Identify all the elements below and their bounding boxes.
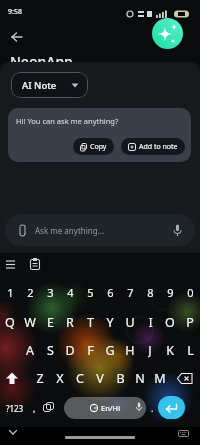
staticText: 1 xyxy=(7,285,14,299)
button[interactable]: W xyxy=(20,314,40,330)
button[interactable]: F xyxy=(80,342,100,358)
staticText: 0 xyxy=(187,285,194,299)
button[interactable]: 7 xyxy=(120,285,140,299)
button[interactable] xyxy=(6,260,16,269)
staticText: W xyxy=(24,314,36,330)
staticText: D xyxy=(65,342,75,358)
staticText: S xyxy=(47,342,54,358)
button[interactable]: I xyxy=(140,314,160,330)
button[interactable]: 8 xyxy=(140,285,160,299)
button[interactable]: B xyxy=(110,370,130,386)
staticText: C xyxy=(76,370,84,386)
button[interactable]: 4 xyxy=(60,285,80,299)
button[interactable]: A xyxy=(20,342,40,358)
staticText: I xyxy=(148,314,153,330)
staticText: Hi! You can ask me anything? xyxy=(16,116,119,126)
staticText: F xyxy=(87,342,94,358)
staticText: A xyxy=(26,342,34,358)
staticText: P xyxy=(186,314,194,330)
staticText: U xyxy=(125,314,135,330)
button[interactable]: ?123 xyxy=(2,399,28,417)
button[interactable] xyxy=(9,430,17,435)
staticText: R xyxy=(66,314,74,330)
staticText: 9:58 xyxy=(8,7,22,17)
button[interactable]: M xyxy=(150,370,170,386)
button[interactable] xyxy=(5,372,19,385)
button[interactable]: Y xyxy=(100,314,120,330)
staticText: K xyxy=(166,342,174,358)
staticText: . xyxy=(151,402,154,414)
staticText: 5 xyxy=(87,285,94,299)
staticText: B xyxy=(116,370,125,386)
staticText: NeonApp xyxy=(10,52,73,71)
button[interactable]: R xyxy=(60,314,80,330)
staticText: T xyxy=(87,314,94,330)
staticText: M xyxy=(154,370,166,386)
button[interactable]: H xyxy=(120,342,140,358)
button[interactable]: En/Hi xyxy=(64,397,146,419)
button[interactable]: 5 xyxy=(80,285,100,299)
staticText: O xyxy=(165,314,175,330)
button[interactable]: P xyxy=(180,314,200,330)
button[interactable]: V xyxy=(90,370,110,386)
button[interactable]: C xyxy=(70,370,90,386)
button[interactable]: J xyxy=(140,342,160,358)
staticText: Z xyxy=(36,370,44,386)
button[interactable] xyxy=(177,373,193,384)
button[interactable]: G xyxy=(100,342,120,358)
button[interactable]: 3 xyxy=(40,285,60,299)
button[interactable]: Q xyxy=(0,314,20,330)
button[interactable]: . xyxy=(147,399,157,417)
button[interactable]: T xyxy=(80,314,100,330)
button[interactable]: 2 xyxy=(20,285,40,299)
staticText: En/Hi xyxy=(101,403,121,413)
button[interactable]: 9 xyxy=(160,285,180,299)
staticText: 3 xyxy=(47,285,54,299)
button[interactable]: O xyxy=(160,314,180,330)
staticText: J xyxy=(148,342,152,358)
staticText: E xyxy=(47,314,54,330)
staticText: 6 xyxy=(107,285,114,299)
button[interactable] xyxy=(158,396,185,419)
staticText: L xyxy=(187,342,194,358)
staticText: 9 xyxy=(167,285,174,299)
button[interactable] xyxy=(43,402,54,413)
staticText: 2 xyxy=(27,285,34,299)
staticText: 8 xyxy=(147,285,154,299)
staticText: Ask me anything... xyxy=(35,225,105,236)
staticText: 4 xyxy=(67,285,74,299)
button[interactable]: X xyxy=(50,370,70,386)
button[interactable]: L xyxy=(180,342,200,358)
staticText: Copy xyxy=(90,142,107,152)
button[interactable]: S xyxy=(40,342,60,358)
button[interactable] xyxy=(30,258,40,270)
button[interactable]: Ask me anything... xyxy=(5,214,195,246)
button[interactable]: 6 xyxy=(100,285,120,299)
button[interactable]: , xyxy=(28,399,40,417)
button[interactable]: 0 xyxy=(180,285,200,299)
staticText: AI Note xyxy=(22,79,57,92)
button[interactable]: AI Note xyxy=(11,72,88,98)
button[interactable] xyxy=(178,430,189,437)
staticText: , xyxy=(33,402,36,414)
staticText: Y xyxy=(106,314,114,330)
staticText: H xyxy=(125,342,135,358)
staticText: G xyxy=(105,342,115,358)
button[interactable]: Z xyxy=(30,370,50,386)
staticText: ?123 xyxy=(6,403,24,414)
staticText: Q xyxy=(5,314,15,330)
button[interactable]: D xyxy=(60,342,80,358)
button[interactable] xyxy=(11,32,23,42)
button[interactable]: K xyxy=(160,342,180,358)
staticText: Add to note xyxy=(139,142,178,152)
button[interactable]: Copy xyxy=(73,138,114,155)
staticText: X xyxy=(56,370,64,386)
button[interactable]: N xyxy=(130,370,150,386)
button[interactable] xyxy=(152,18,183,49)
button[interactable]: 1 xyxy=(0,285,20,299)
staticText: N xyxy=(135,370,145,386)
staticText: V xyxy=(96,370,104,386)
button[interactable]: U xyxy=(120,314,140,330)
button[interactable]: Add to note xyxy=(121,138,185,155)
button[interactable]: E xyxy=(40,314,60,330)
